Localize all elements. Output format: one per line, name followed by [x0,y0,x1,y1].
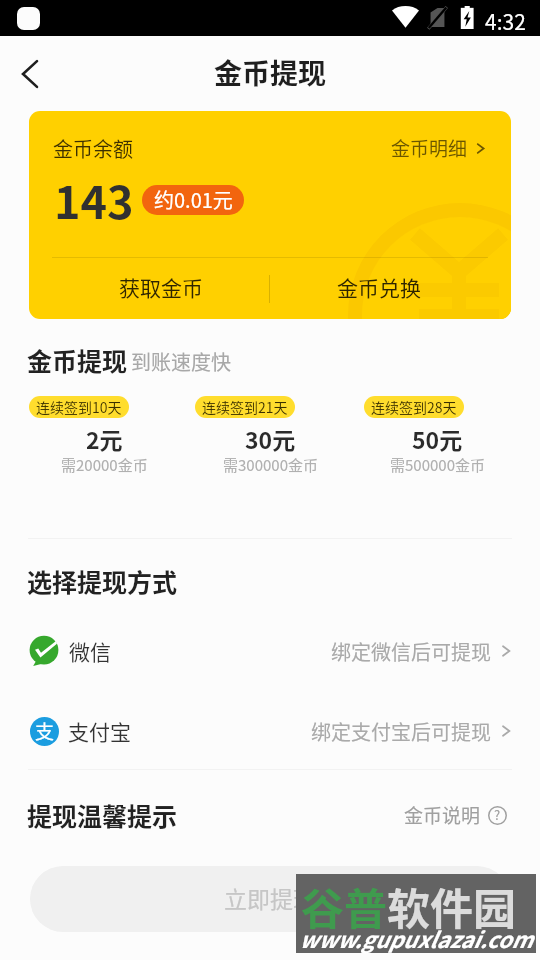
staticText: 软件园 [387,875,516,937]
button[interactable]: 立即提现 [30,866,510,932]
staticText: 支付宝 [68,716,131,746]
staticText: 连续签到28天 [371,397,457,417]
button[interactable]: 金币说明 [404,801,507,829]
button[interactable]: 连续签到10天 [21,393,187,426]
staticText: 30元 [245,422,296,455]
staticText: 4:32 [485,6,526,36]
staticText: 金币说明 [404,801,481,829]
staticText: 连续签到21天 [202,397,288,417]
button[interactable]: Back [6,50,54,98]
staticText: 提现温馨提示 [27,797,178,833]
staticText: 到账速度快 [131,347,231,376]
staticText: 143 [54,167,134,232]
staticText: 微信 [69,636,111,666]
staticText: 谷普 [301,875,387,937]
staticText: 需20000金币 [61,454,148,476]
staticText: www.gupuxlazai.com [299,922,533,954]
button[interactable]: 微信 [28,630,512,672]
staticText: 金币兑换 [337,272,421,302]
button[interactable]: 金币兑换 [270,258,488,319]
staticText: 支 [35,717,55,745]
button[interactable]: 连续签到21天 [187,393,353,426]
staticText: 金币提现 [214,52,327,93]
staticText: 需300000金币 [223,454,318,476]
staticText: 2元 [86,422,123,455]
staticText: 获取金币 [119,272,203,302]
staticText: 绑定微信后可提现 [331,637,491,666]
staticText: 绑定支付宝后可提现 [311,717,491,746]
button[interactable]: 获取金币 [52,258,269,319]
staticText: 立即提现 [224,881,316,914]
staticText: 选择提现方式 [27,563,178,599]
staticText: ? [494,805,501,824]
staticText: 需500000金币 [390,454,485,476]
staticText: 金币提现 [27,342,128,378]
staticText: 金币余额 [53,134,133,163]
button[interactable]: 金币明细 [391,134,486,162]
staticText: 50元 [412,422,463,455]
button[interactable]: 连续签到28天 [354,393,520,426]
staticText: 约0.01元 [154,185,233,214]
staticText: 连续签到10天 [36,397,122,417]
button[interactable]: 支 [28,710,512,752]
staticText: 金币明细 [391,134,468,162]
